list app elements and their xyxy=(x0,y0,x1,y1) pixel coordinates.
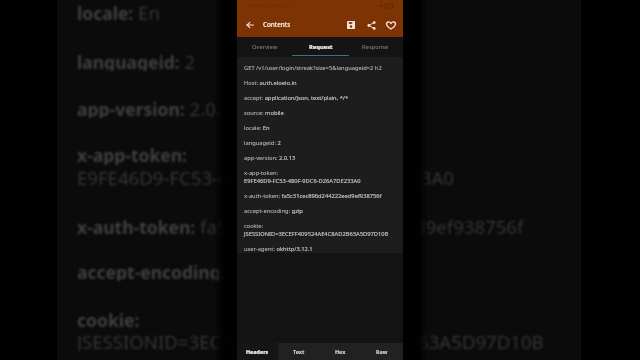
staticText: Text xyxy=(293,348,305,355)
staticText: languageid: 2 xyxy=(244,139,281,147)
staticText: Host: auth.eloelo.in xyxy=(244,79,297,87)
staticText: x-app-token: E9FE46D9-FC53-480F-9DC6-D26… xyxy=(244,169,361,185)
staticText: E9FE46D9-FC53-480F-9DC6-D26A7DE233A0 xyxy=(77,165,454,187)
button[interactable]: Headers xyxy=(237,343,278,360)
staticText: GET /v1/user/login/streak?size=5&languag… xyxy=(244,64,382,72)
button[interactable]: Raw xyxy=(361,343,403,360)
staticText: Request xyxy=(309,43,333,51)
button[interactable]: Back xyxy=(243,18,257,32)
staticText: accept-encoding: gzip xyxy=(244,207,303,215)
staticText: cookie: xyxy=(77,308,140,330)
button[interactable]: Overview xyxy=(237,37,293,56)
staticText: JSESSIONID=3ECEFF409524AE4C8AD2B63A5D97D… xyxy=(77,329,544,351)
staticText: Headers xyxy=(246,348,269,355)
button[interactable]: Text xyxy=(278,343,319,360)
button[interactable]: Share xyxy=(364,18,378,32)
staticText: app-version: 2.0.13 xyxy=(77,96,243,118)
staticText: x-app-token: xyxy=(77,143,188,165)
staticText: Overview xyxy=(252,43,278,51)
staticText: Contents xyxy=(263,20,291,29)
button[interactable]: Request xyxy=(293,37,348,56)
staticText: source: mobile xyxy=(244,109,284,117)
staticText: Response xyxy=(362,43,389,51)
button[interactable]: Response xyxy=(348,37,403,56)
staticText: accept: application/json, text/plain, */… xyxy=(244,94,349,102)
button[interactable]: Hex xyxy=(319,343,361,360)
staticText: locale: En xyxy=(244,124,270,132)
staticText: Hex xyxy=(335,348,346,355)
button[interactable]: Save xyxy=(344,18,358,32)
staticText: cookie: JSESSIONID=3ECEFF409524AE4C8AD2B… xyxy=(244,222,389,238)
staticText: x-auth-token: fa5c31cec896d244222eed9ef9… xyxy=(244,192,382,200)
staticText: languageid: 2 xyxy=(77,49,196,71)
staticText: 12:44 PM | 5.9Kb/s ○ ••• xyxy=(248,3,296,9)
staticText: locale: En xyxy=(77,0,160,22)
staticText: x-auth-token: fa5c31cec896d244222eed9ef9… xyxy=(77,214,524,236)
button[interactable]: Favorite xyxy=(384,18,398,32)
staticText: user-agent: okhttp/3.12.1 xyxy=(244,245,313,253)
staticText: app-version: 2.0.13 xyxy=(244,154,296,162)
staticText: Raw xyxy=(376,348,388,355)
staticText: accept-encoding: gzip xyxy=(77,259,267,281)
